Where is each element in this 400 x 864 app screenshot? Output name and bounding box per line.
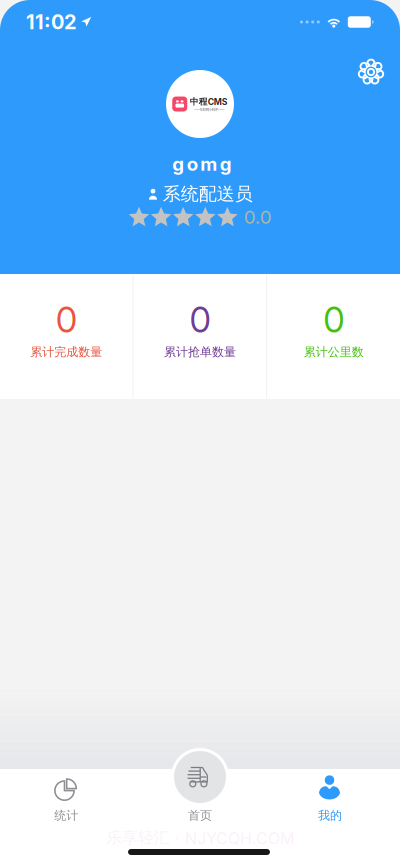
staticText: 0 [323, 299, 344, 341]
staticText: 我的 [318, 808, 342, 823]
button[interactable]: 0 [0, 274, 133, 399]
staticText: 11:02 [26, 10, 77, 34]
button[interactable]: 首页 [133, 769, 267, 825]
button[interactable]: 统计 [0, 769, 133, 825]
staticText: 累计完成数量 [30, 344, 102, 359]
staticText: 统计 [54, 808, 78, 823]
button[interactable]: 0 [134, 274, 266, 399]
staticText: 0.0 [244, 206, 272, 228]
staticText: 累计抢单数量 [164, 344, 236, 359]
staticText: 首页 [188, 808, 212, 823]
button[interactable]: Settings [349, 50, 392, 93]
button[interactable]: 0 [267, 274, 400, 399]
staticText: 系统配送员 [163, 183, 253, 205]
staticText: 累计公里数 [304, 344, 364, 359]
button[interactable]: 首页 [171, 748, 229, 806]
staticText: 0 [56, 299, 77, 341]
button[interactable]: 我的 [267, 769, 400, 825]
staticText: 0 [189, 299, 210, 341]
staticText: gomg [172, 153, 232, 175]
staticText: ——互联网小程序—— [194, 107, 224, 112]
staticText: 乐享轻汇 · NJYCQH.COM [106, 828, 294, 848]
staticText: 中程CMS [190, 96, 228, 107]
